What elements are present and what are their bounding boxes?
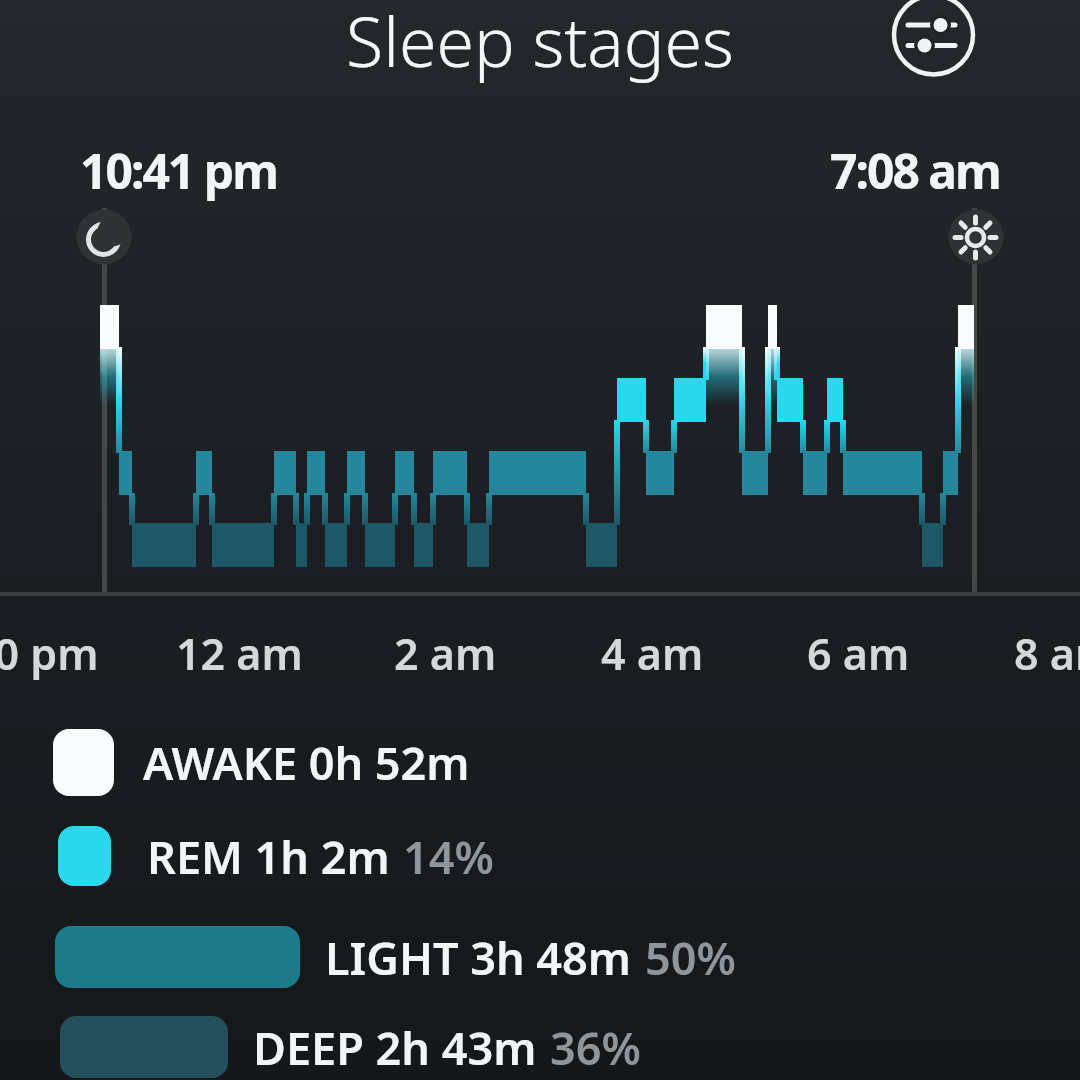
staticText: 10 pm xyxy=(0,624,99,683)
button[interactable] xyxy=(55,926,300,988)
button[interactable] xyxy=(53,729,114,796)
staticText: 8 am xyxy=(1014,624,1080,683)
staticText: AWAKE 0h 52m xyxy=(143,732,470,793)
staticText: 36% xyxy=(550,1017,641,1078)
staticText: 12 am xyxy=(176,624,303,683)
staticText: 10:41 pm xyxy=(80,138,277,203)
button[interactable] xyxy=(58,826,111,886)
button[interactable] xyxy=(892,0,976,84)
staticText: 2 am xyxy=(394,624,497,683)
staticText: 50% xyxy=(645,927,736,988)
button[interactable] xyxy=(60,1016,228,1078)
staticText: LIGHT 3h 48m xyxy=(325,927,632,988)
staticText: 6 am xyxy=(807,624,910,683)
staticText: 4 am xyxy=(601,624,704,683)
staticText: DEEP 2h 43m xyxy=(253,1017,537,1078)
staticText: Sleep stages xyxy=(346,0,734,87)
staticText: 14% xyxy=(403,826,494,886)
staticText: 7:08 am xyxy=(830,138,1000,203)
staticText: REM 1h 2m xyxy=(147,826,390,886)
